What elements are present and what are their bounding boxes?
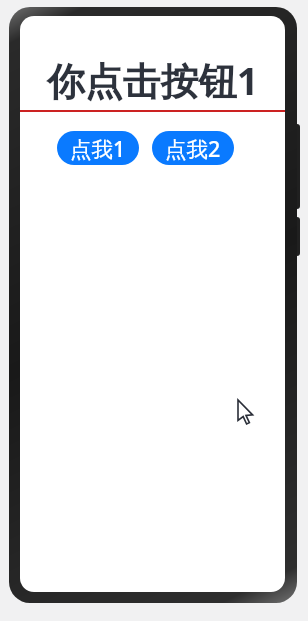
staticText: 点我2 (165, 134, 221, 163)
staticText: 你点击按钮1 (20, 54, 285, 106)
staticText: 点我1 (70, 134, 126, 163)
button[interactable]: 点我1 (57, 131, 139, 165)
button[interactable]: 点我2 (152, 131, 234, 165)
